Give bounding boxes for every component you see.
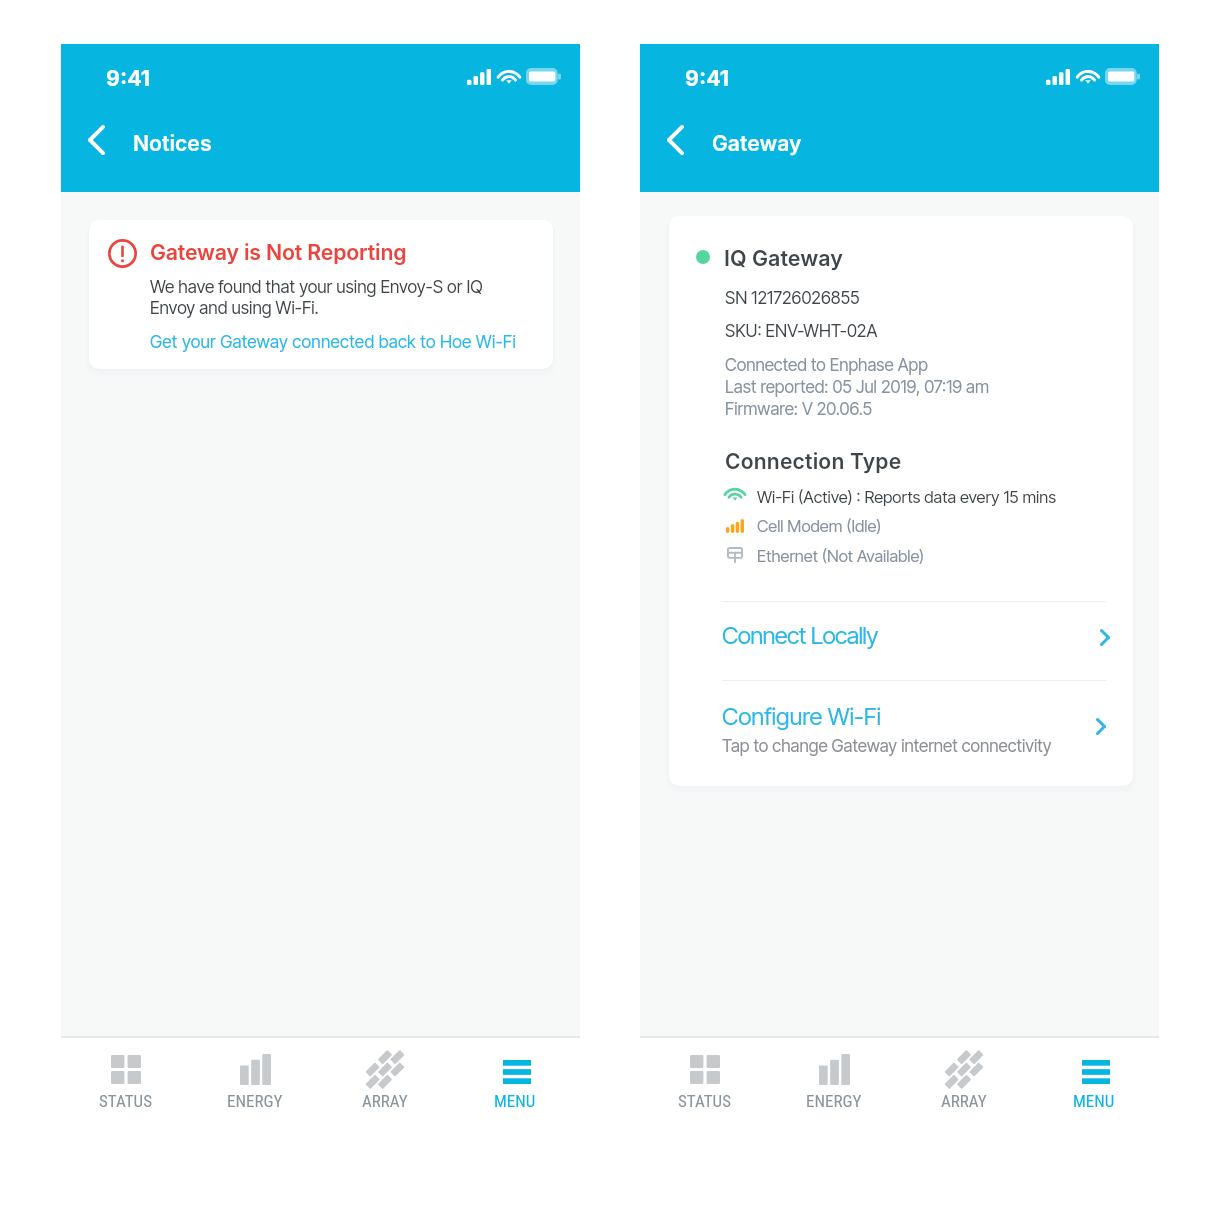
button[interactable]: STATUS <box>61 1038 190 1098</box>
button[interactable]: ARRAY <box>899 1038 1029 1098</box>
button[interactable]: MENU <box>450 1038 580 1098</box>
staticText: Gateway is Not Reporting <box>150 239 407 265</box>
staticText: SN 121726026855 <box>725 287 860 308</box>
staticText: Gateway <box>712 130 802 156</box>
button[interactable]: ENERGY <box>190 1038 320 1098</box>
staticText: ARRAY <box>941 1091 987 1111</box>
button[interactable]: STATUS <box>640 1038 769 1098</box>
staticText: MENU <box>494 1091 536 1111</box>
staticText: Tap to change Gateway internet connectiv… <box>722 735 1052 756</box>
staticText: STATUS <box>678 1091 731 1111</box>
staticText: Notices <box>133 130 212 156</box>
staticText: STATUS <box>99 1091 152 1111</box>
button[interactable]: Back <box>654 113 696 167</box>
staticText: Connected to Enphase App Last reported: … <box>725 353 990 419</box>
staticText: Ethernet (Not Available) <box>757 546 925 566</box>
staticText: MENU <box>1073 1091 1115 1111</box>
button[interactable]: ENERGY <box>769 1038 899 1098</box>
staticText: 9:41 <box>106 65 151 91</box>
button[interactable]: Back <box>75 113 117 167</box>
staticText: ENERGY <box>227 1091 283 1111</box>
staticText: Wi-Fi (Active) : Reports data every 15 m… <box>757 487 1057 507</box>
staticText: Connection Type <box>725 449 902 475</box>
button[interactable]: MENU <box>1029 1038 1159 1098</box>
staticText: Configure Wi-Fi <box>722 702 882 731</box>
staticText: Cell Modem (Idle) <box>757 516 882 536</box>
staticText: Get your Gateway connected back to Hoe W… <box>150 331 517 352</box>
staticText: 9:41 <box>685 65 730 91</box>
button[interactable]: Gateway is Not Reporting <box>89 220 553 369</box>
staticText: ARRAY <box>362 1091 408 1111</box>
staticText: IQ Gateway <box>724 245 843 271</box>
staticText: ENERGY <box>806 1091 862 1111</box>
button[interactable]: Configure Wi-Fi <box>669 688 1133 780</box>
button[interactable]: Connect Locally <box>669 610 1133 680</box>
staticText: Connect Locally <box>722 621 878 650</box>
staticText: We have found that your using Envoy-S or… <box>150 276 483 318</box>
staticText: SKU: ENV-WHT-02A <box>725 320 878 341</box>
button[interactable]: ARRAY <box>320 1038 450 1098</box>
